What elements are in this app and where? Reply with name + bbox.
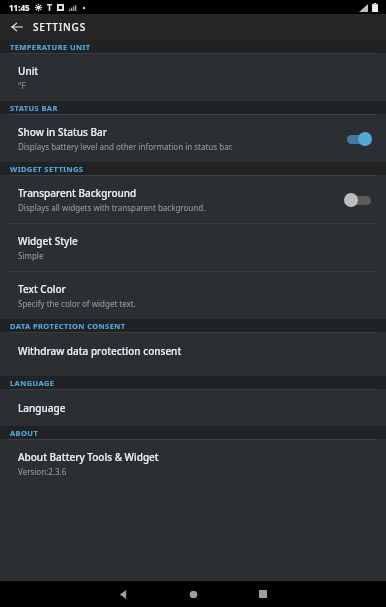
button[interactable]: Widget Style	[0, 224, 386, 271]
staticText: Language	[18, 401, 66, 415]
staticText: 11:45	[9, 2, 30, 13]
staticText: °F	[18, 80, 26, 91]
button[interactable]: Show in Status Bar	[0, 115, 386, 162]
staticText: Displays all widgets with transparent ba…	[18, 202, 206, 213]
staticText: Withdraw data protection consent	[18, 344, 182, 358]
staticText: About Battery Tools & Widget	[18, 450, 159, 464]
staticText: Displays battery level and other informa…	[18, 141, 233, 152]
staticText: Show in Status Bar	[18, 125, 108, 139]
button[interactable]: Recent apps	[250, 581, 276, 607]
button[interactable]: About Battery Tools & Widget	[0, 440, 386, 487]
staticText: ABOUT	[10, 428, 39, 438]
staticText: Widget Style	[18, 234, 78, 248]
button[interactable]: Language	[0, 390, 386, 426]
staticText: Unit	[18, 64, 39, 78]
staticText: TEMPERATURE UNIT	[10, 42, 91, 52]
button[interactable]: Transparent Background	[0, 176, 386, 223]
button[interactable]: Back	[110, 581, 136, 607]
staticText: DATA PROTECTION CONSENT	[10, 321, 126, 331]
staticText: Version:2.3.6	[18, 466, 67, 477]
staticText: SETTINGS	[33, 20, 86, 34]
button[interactable]: Withdraw data protection consent	[0, 333, 386, 376]
button[interactable]: Unit	[0, 54, 386, 101]
button[interactable]: Home	[180, 581, 206, 607]
staticText: STATUS BAR	[10, 103, 58, 113]
staticText: WIDGET SETTINGS	[10, 164, 84, 174]
staticText: Specify the color of widget text.	[18, 298, 136, 309]
staticText: Transparent Background	[18, 186, 137, 200]
staticText: Simple	[18, 250, 44, 261]
button[interactable]: Text Color	[0, 272, 386, 319]
staticText: Text Color	[18, 282, 66, 296]
button[interactable]: Back	[7, 17, 27, 37]
staticText: LANGUAGE	[10, 378, 55, 388]
